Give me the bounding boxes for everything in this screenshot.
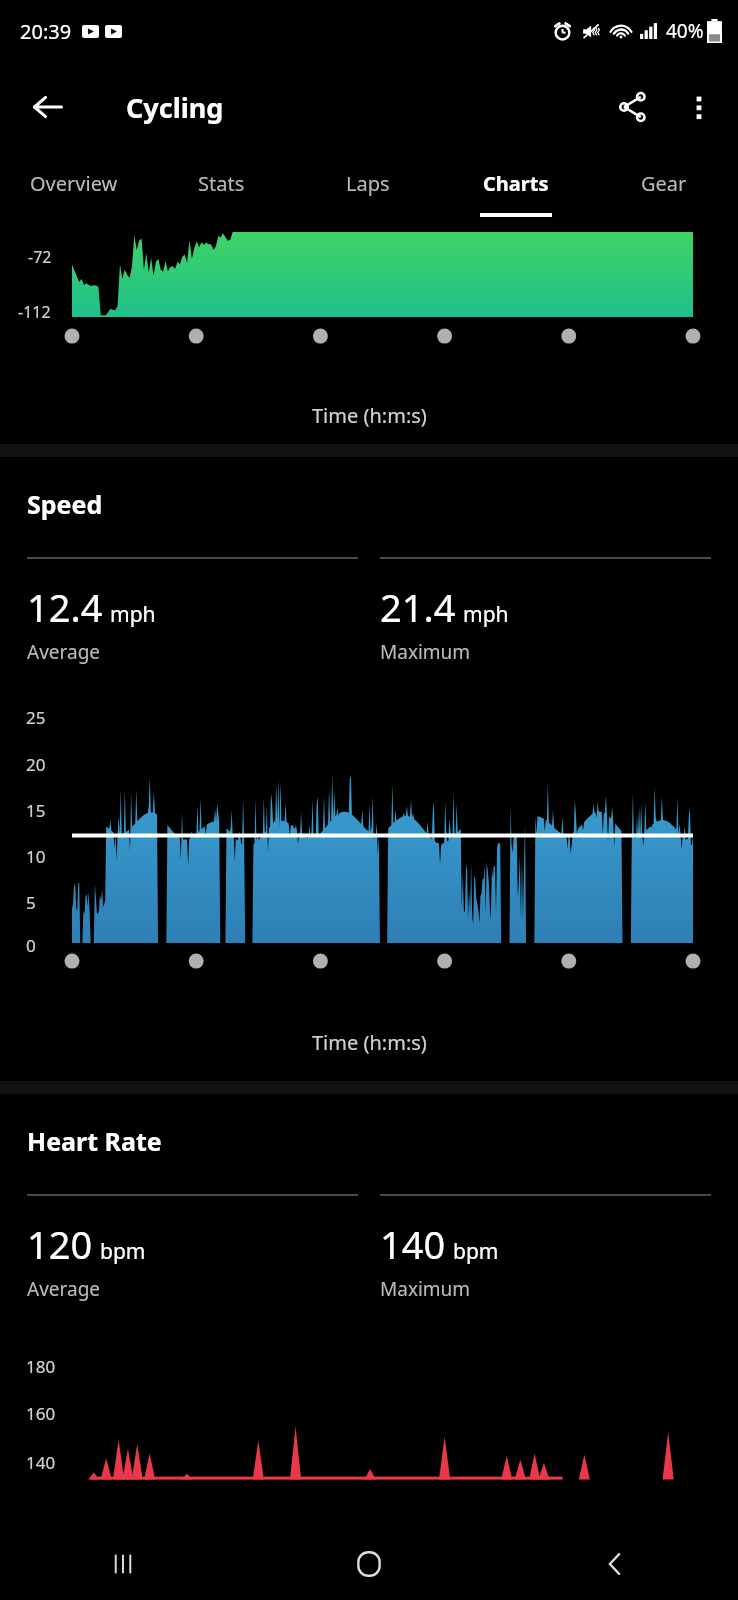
staticText: 140 xyxy=(380,1218,446,1270)
staticText: Time (h:m:s) xyxy=(312,1029,427,1056)
staticText: 120 xyxy=(27,1218,93,1270)
staticText: 20:39 xyxy=(20,18,72,45)
staticText: 40% xyxy=(666,18,704,44)
button[interactable]: More options xyxy=(666,74,732,140)
staticText: Time (h:m:s) xyxy=(312,402,427,429)
staticText: Average xyxy=(27,639,101,665)
staticText: Overview xyxy=(30,170,118,197)
staticText: 140 xyxy=(26,1451,56,1474)
staticText: Speed xyxy=(27,487,103,521)
staticText: 25 xyxy=(26,706,46,729)
button[interactable]: Share xyxy=(600,74,666,140)
staticText: 20 xyxy=(26,753,46,776)
staticText: 12.4 xyxy=(27,581,103,633)
staticText: 21.4 xyxy=(380,581,456,633)
staticText: 10 xyxy=(26,845,46,868)
staticText: 180 xyxy=(26,1355,56,1378)
button[interactable]: Back xyxy=(492,1528,738,1600)
staticText: Cycling xyxy=(126,89,224,126)
button[interactable]: Charts xyxy=(442,152,590,224)
staticText: mph xyxy=(110,600,156,629)
staticText: 160 xyxy=(26,1402,56,1425)
staticText: mph xyxy=(463,600,509,629)
button[interactable]: Laps xyxy=(294,152,442,224)
staticText: Maximum xyxy=(380,1276,471,1302)
staticText: Maximum xyxy=(380,639,471,665)
button[interactable]: Back xyxy=(12,71,84,143)
staticText: -112 xyxy=(18,301,51,323)
staticText: -72 xyxy=(28,246,52,268)
button[interactable]: Home xyxy=(246,1528,492,1600)
staticText: Heart Rate xyxy=(27,1124,162,1158)
button[interactable]: Stats xyxy=(147,152,294,224)
staticText: Stats xyxy=(198,170,245,197)
staticText: bpm xyxy=(100,1237,146,1266)
staticText: 15 xyxy=(26,799,46,822)
staticText: 5 xyxy=(26,891,36,914)
button[interactable]: Gear xyxy=(590,152,738,224)
staticText: 0 xyxy=(26,934,36,957)
staticText: bpm xyxy=(453,1237,499,1266)
button[interactable]: Recent apps xyxy=(0,1528,246,1600)
staticText: Gear xyxy=(641,170,687,197)
staticText: Average xyxy=(27,1276,101,1302)
button[interactable]: Overview xyxy=(0,152,147,224)
staticText: Laps xyxy=(346,170,390,197)
staticText: Charts xyxy=(483,170,549,197)
